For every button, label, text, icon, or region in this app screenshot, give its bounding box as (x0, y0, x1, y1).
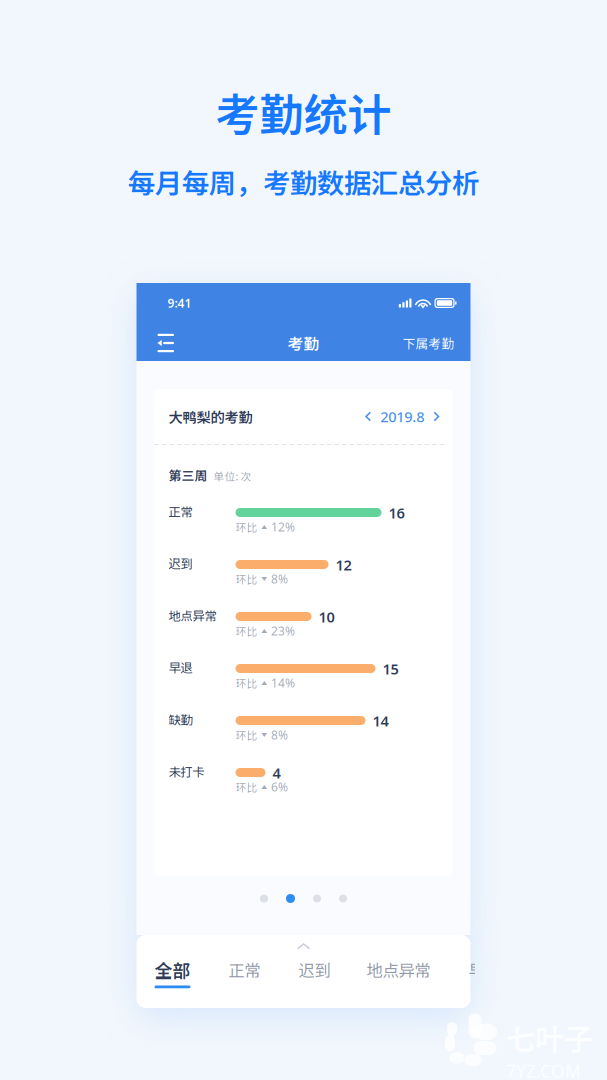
staticText: 4 (272, 763, 280, 782)
staticText: 未打卡 (168, 762, 204, 780)
staticText: 缺勤 (168, 710, 192, 728)
staticText: 地点异常 (366, 958, 430, 981)
button[interactable]: 正常 (228, 958, 260, 987)
button[interactable]: Expand (136, 935, 470, 949)
button[interactable]: 下属考勤 (402, 331, 454, 355)
staticText: 七叶子 (506, 1016, 593, 1058)
staticText: 环比 (235, 675, 257, 691)
button[interactable]: 地点异常 (366, 958, 430, 987)
staticText: 2019.8 (380, 407, 424, 426)
staticText: 每月每周，考勤数据汇总分析 (128, 162, 479, 201)
staticText: 12% (271, 519, 295, 535)
staticText: 环比 (235, 727, 257, 743)
button[interactable]: 早退 (468, 958, 500, 987)
staticText: 考勤 (287, 332, 319, 354)
staticText: 6% (271, 779, 288, 795)
staticText: 早退 (468, 958, 500, 981)
staticText: 15 (382, 659, 398, 678)
staticText: 环比 (235, 571, 257, 587)
staticText: 10 (318, 607, 334, 626)
staticText: 早退 (168, 658, 192, 676)
button[interactable]: Menu (157, 331, 195, 355)
staticText: 大鸭梨的考勤 (168, 406, 252, 427)
staticText: 地点异常 (168, 606, 216, 624)
staticText: 9:41 (167, 295, 191, 311)
staticText: 迟到 (298, 958, 330, 981)
staticText: 8% (271, 571, 288, 587)
staticText: 7YZ.COM (506, 1059, 581, 1080)
staticText: 迟到 (168, 554, 192, 572)
staticText: 考勤统计 (215, 80, 391, 144)
staticText: 第三周 (168, 466, 207, 484)
staticText: 下属考勤 (402, 334, 454, 352)
staticText: 12 (335, 555, 351, 574)
staticText: 23% (271, 623, 295, 639)
button[interactable]: 迟到 (298, 958, 330, 987)
button[interactable]: Previous month (363, 412, 373, 421)
staticText: 16 (388, 503, 404, 522)
staticText: 全部 (154, 957, 190, 982)
staticText: 环比 (235, 779, 257, 795)
button[interactable]: 全部 (154, 957, 190, 988)
button[interactable]: Next month (431, 412, 441, 421)
staticText: 正常 (168, 502, 192, 520)
staticText: 单位: 次 (213, 468, 251, 483)
staticText: 14 (372, 711, 388, 730)
staticText: 8% (271, 727, 288, 743)
staticText: 环比 (235, 519, 257, 535)
staticText: 正常 (228, 958, 260, 981)
staticText: 14% (271, 675, 295, 691)
staticText: 环比 (235, 623, 257, 639)
